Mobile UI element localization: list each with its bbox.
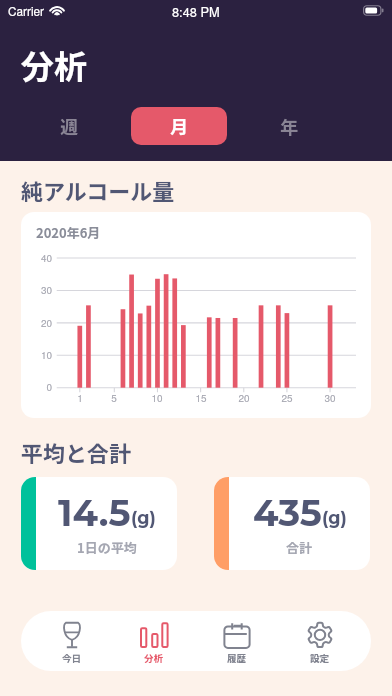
button[interactable]: 年 [241, 107, 337, 145]
staticText: 設定 [310, 651, 330, 665]
staticText: 10 [145, 391, 169, 405]
staticText: 2020年6月 [36, 223, 101, 242]
staticText: Carrier [8, 2, 45, 19]
staticText: 月 [170, 113, 188, 139]
button[interactable]: 435 [214, 477, 370, 570]
staticText: 1 [68, 391, 92, 405]
staticText: 25 [275, 391, 299, 405]
button[interactable]: 週 [21, 107, 117, 145]
staticText: 週 [60, 113, 78, 139]
staticText: 5 [102, 391, 126, 405]
staticText: 純アルコール量 [21, 174, 175, 206]
staticText: 40 [21, 251, 52, 265]
button[interactable]: 14.5 [21, 477, 177, 570]
staticText: 0 [21, 380, 52, 394]
staticText: 15 [189, 391, 213, 405]
staticText: 合計 [286, 538, 313, 557]
staticText: 平均と合計 [21, 436, 132, 468]
button[interactable]: Today [31, 620, 113, 665]
staticText: 20 [232, 391, 256, 405]
staticText: 分析 [21, 41, 87, 89]
staticText: 年 [280, 113, 298, 139]
staticText: 30 [21, 283, 52, 297]
staticText: 435 [253, 490, 322, 535]
staticText: (g) [322, 507, 347, 528]
staticText: (g) [131, 507, 156, 528]
button[interactable]: 月 [131, 107, 227, 145]
button[interactable]: History [195, 620, 278, 665]
staticText: 20 [21, 316, 52, 330]
staticText: 30 [318, 391, 342, 405]
button[interactable]: Analysis [113, 620, 195, 665]
staticText: 今日 [62, 651, 82, 665]
staticText: 1日の平均 [77, 538, 137, 557]
staticText: 履歴 [227, 651, 247, 665]
staticText: 14.5 [58, 490, 131, 535]
button[interactable]: Settings [278, 620, 361, 665]
staticText: 10 [21, 348, 52, 362]
staticText: 分析 [144, 651, 164, 665]
staticText: 8:48 PM [172, 2, 220, 20]
